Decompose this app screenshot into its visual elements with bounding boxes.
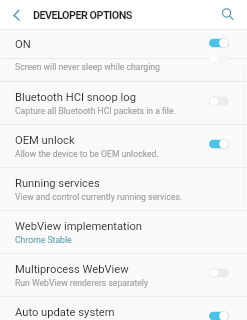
button[interactable]: OEM unlock xyxy=(0,125,247,167)
button[interactable]: Toggle, on xyxy=(209,139,229,149)
staticText: Multiprocess WebView xyxy=(15,263,203,276)
button[interactable]: Running services xyxy=(0,168,247,210)
staticText: Allow the device to be OEM unlocked. xyxy=(15,149,211,159)
button[interactable]: Multiprocess WebView xyxy=(0,254,247,296)
staticText: Run WebView renderers separately xyxy=(15,278,211,288)
button[interactable]: Toggle, off xyxy=(209,268,229,278)
button[interactable]: Screen will never sleep while charging xyxy=(0,59,247,81)
staticText: Chrome Stable xyxy=(15,235,211,245)
button[interactable]: Search xyxy=(218,4,236,22)
staticText: Screen will never sleep while charging xyxy=(15,62,211,72)
button[interactable]: Toggle, on xyxy=(209,38,229,48)
staticText: Auto update system xyxy=(15,306,203,319)
staticText: WebView implementation xyxy=(15,220,203,233)
staticText: View and control currently running servi… xyxy=(15,192,211,202)
button[interactable]: Toggle, on xyxy=(209,311,229,320)
staticText: Capture all Bluetooth HCI packets in a f… xyxy=(15,106,211,116)
button[interactable]: WebView implementation xyxy=(0,211,247,253)
staticText: Bluetooth HCI snoop log xyxy=(15,91,203,104)
button[interactable]: Auto update system xyxy=(0,297,247,320)
staticText: ON xyxy=(15,38,203,51)
button[interactable]: Toggle, off xyxy=(209,96,229,106)
staticText: Running services xyxy=(15,177,203,190)
button[interactable]: Bluetooth HCI snoop log xyxy=(0,82,247,124)
staticText: DEVELOPER OPTIONS xyxy=(33,9,132,22)
button[interactable]: Navigate up xyxy=(8,7,25,24)
button[interactable]: ON xyxy=(0,29,247,58)
staticText: OEM unlock xyxy=(15,134,203,147)
button[interactable]: Toggle, off xyxy=(209,54,229,64)
